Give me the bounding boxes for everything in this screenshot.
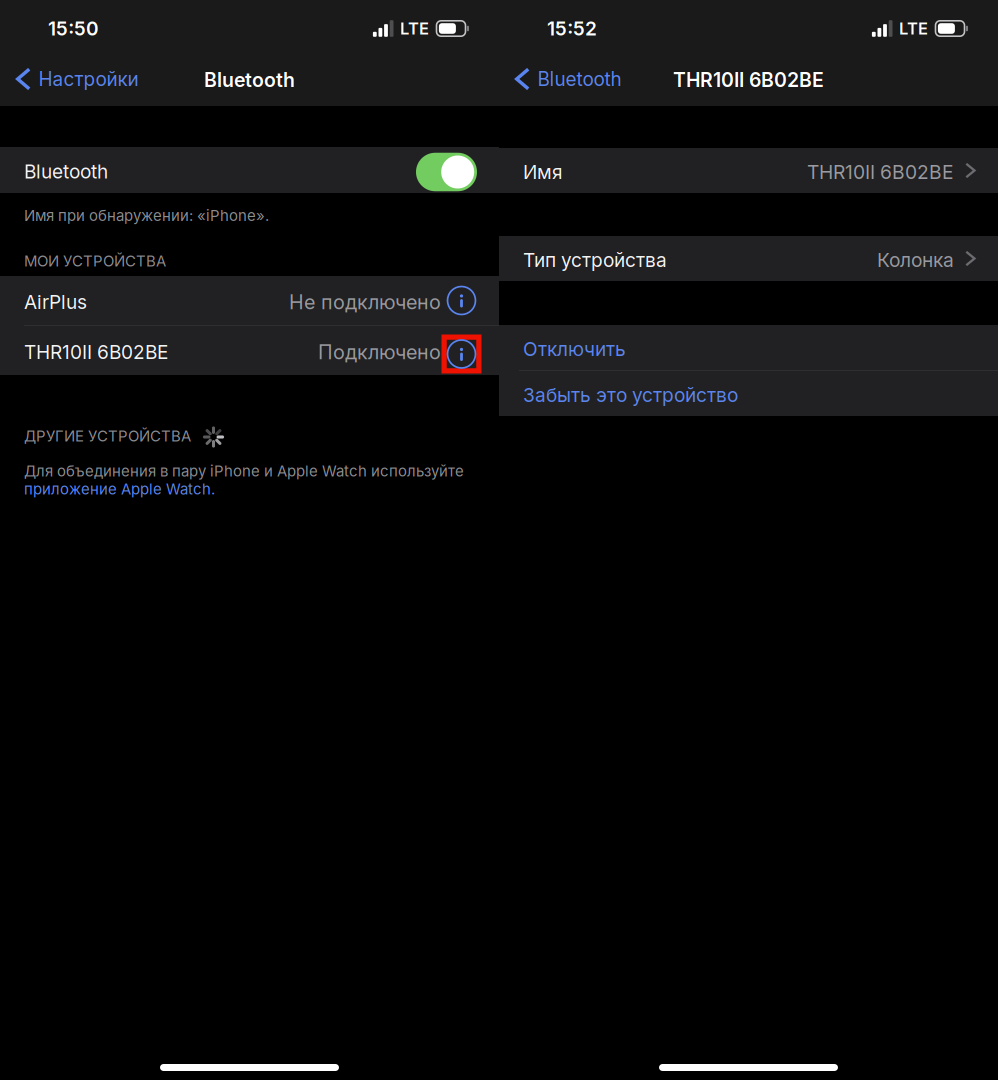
staticText: приложение Apple Watch. xyxy=(24,480,215,498)
staticText: Bluetooth xyxy=(24,160,108,183)
staticText: LTE xyxy=(400,18,429,38)
staticText: Забыть это устройство xyxy=(523,383,738,407)
staticText: Тип устройства xyxy=(523,248,667,272)
staticText: МОИ УСТРОЙСТВА xyxy=(24,252,166,270)
button[interactable]: AirPlus xyxy=(0,276,499,325)
staticText: AirPlus xyxy=(24,290,87,314)
staticText: 15:50 xyxy=(48,17,99,40)
button[interactable]: Настройки xyxy=(0,52,148,106)
staticText: LTE xyxy=(899,18,928,38)
button[interactable]: Bluetooth xyxy=(416,151,477,189)
button[interactable]: More info about AirPlus xyxy=(441,281,481,320)
button[interactable]: Имя xyxy=(499,148,998,193)
staticText: Имя xyxy=(523,160,563,184)
staticText: 15:52 xyxy=(547,17,597,40)
staticText: THR10II 6B02BE xyxy=(673,68,824,92)
staticText: ДРУГИЕ УСТРОЙСТВА xyxy=(24,427,191,445)
staticText: THR10II 6B02BE xyxy=(807,160,954,184)
staticText: Подключено xyxy=(318,340,441,364)
staticText: Отключить xyxy=(523,337,626,361)
button[interactable]: Забыть это устройство xyxy=(499,371,998,416)
staticText: Имя при обнаружении: «iPhone». xyxy=(24,206,269,225)
button[interactable]: Bluetooth xyxy=(499,52,631,106)
button[interactable]: THR10II 6B02BE xyxy=(0,326,499,375)
staticText: Bluetooth xyxy=(537,67,621,90)
staticText: Bluetooth xyxy=(204,68,295,92)
button[interactable]: More info about THR10II 6B02BE xyxy=(441,331,481,370)
staticText: Не подключено xyxy=(289,290,441,314)
staticText: THR10II 6B02BE xyxy=(24,340,168,364)
button[interactable]: приложение Apple Watch. xyxy=(24,480,215,498)
button[interactable]: Тип устройства xyxy=(499,236,998,281)
staticText: Колонка xyxy=(877,248,954,272)
staticText: Настройки xyxy=(38,67,138,90)
staticText: Для объединения в пару iPhone и Apple Wa… xyxy=(24,462,464,480)
button[interactable]: Отключить xyxy=(499,325,998,370)
